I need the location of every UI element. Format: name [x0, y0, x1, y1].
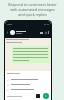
button[interactable] [7, 77, 49, 82]
button[interactable]: Send [43, 93, 49, 99]
button[interactable] [7, 82, 49, 87]
staticText: with automated messages [10, 7, 55, 12]
staticText: and quick replies [18, 12, 47, 17]
button[interactable]: Scan code [36, 94, 40, 98]
staticText: Respond to customers faster [8, 2, 57, 7]
button[interactable] [7, 87, 49, 92]
